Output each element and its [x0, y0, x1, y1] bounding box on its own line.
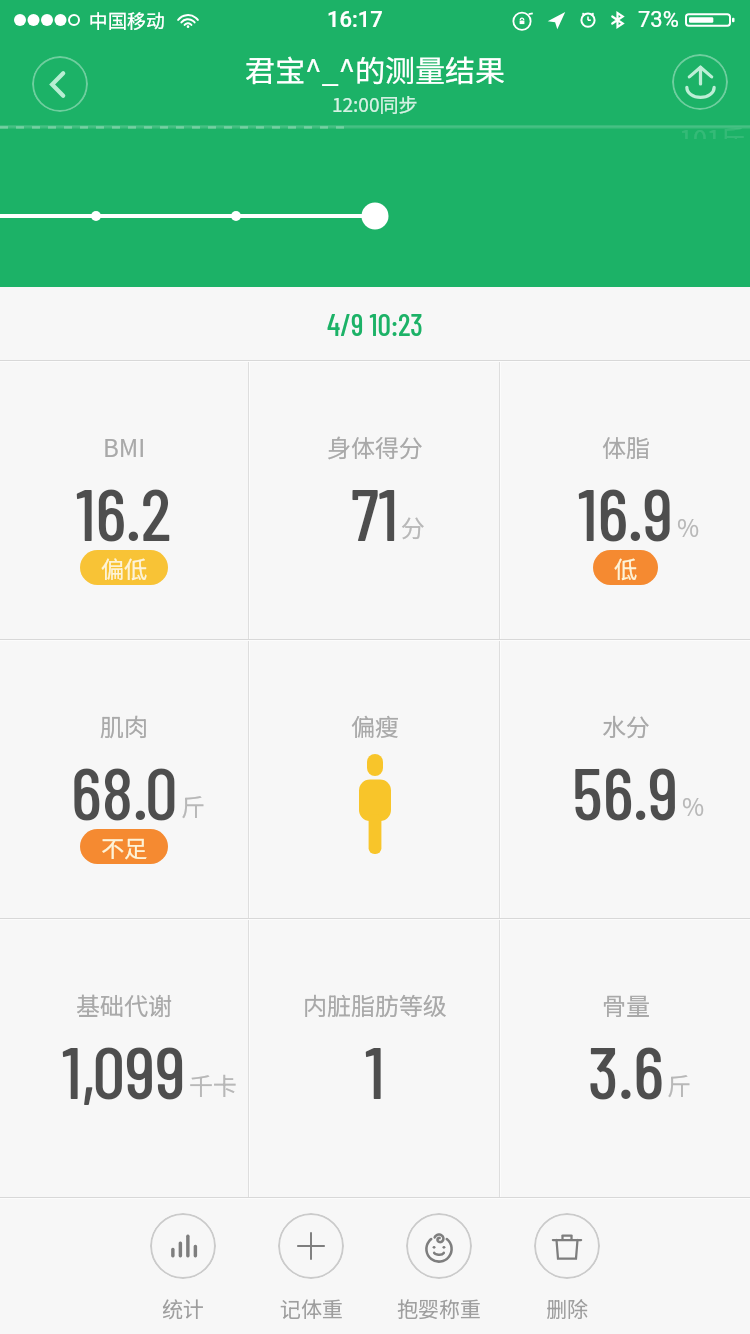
- staticText: 3.6: [588, 1026, 664, 1114]
- staticText: 71: [351, 468, 398, 556]
- staticText: 偏低: [101, 551, 147, 584]
- button[interactable]: BMI: [0, 362, 248, 639]
- button[interactable]: 抱婴称重: [376, 1213, 502, 1323]
- staticText: 56.9: [572, 747, 679, 835]
- button[interactable]: 删除: [504, 1213, 630, 1323]
- staticText: 删除: [546, 1293, 588, 1323]
- button[interactable]: 水分: [501, 641, 750, 918]
- staticText: 内脏脂肪等级: [303, 987, 447, 1022]
- staticText: 体脂: [602, 429, 650, 464]
- staticText: BMI: [103, 429, 146, 464]
- button[interactable]: 基础代谢: [0, 920, 248, 1197]
- staticText: 16:17: [327, 7, 383, 33]
- staticText: 12:00同步: [332, 90, 418, 118]
- button[interactable]: 骨量: [501, 920, 750, 1197]
- button[interactable]: 身体得分: [250, 362, 499, 639]
- staticText: 斤: [667, 1067, 691, 1102]
- staticText: 1,099: [62, 1026, 186, 1114]
- button[interactable]: Back: [32, 56, 88, 112]
- staticText: 中国移动: [89, 6, 166, 34]
- staticText: 千卡: [189, 1067, 237, 1102]
- button[interactable]: 记体重: [248, 1213, 374, 1323]
- staticText: 1: [365, 1026, 385, 1114]
- button[interactable]: 内脏脂肪等级: [250, 920, 499, 1197]
- staticText: 肌肉: [100, 708, 148, 743]
- staticText: 低: [614, 551, 637, 584]
- button[interactable]: 体脂: [501, 362, 750, 639]
- staticText: 基础代谢: [76, 987, 172, 1022]
- button[interactable]: 统计: [120, 1213, 246, 1323]
- staticText: 16.2: [76, 468, 172, 556]
- button[interactable]: 肌肉: [0, 641, 248, 918]
- staticText: 16.9: [578, 468, 674, 556]
- staticText: 4/9 10:23: [327, 306, 423, 342]
- staticText: 骨量: [602, 987, 650, 1022]
- staticText: %: [682, 788, 705, 823]
- staticText: 101斤: [679, 128, 746, 139]
- staticText: 斤: [181, 788, 205, 823]
- staticText: 73%: [638, 7, 679, 33]
- button[interactable]: Share: [672, 54, 728, 110]
- staticText: 不足: [101, 830, 147, 863]
- button[interactable]: 偏低: [80, 550, 168, 585]
- staticText: 记体重: [280, 1293, 343, 1323]
- staticText: 统计: [162, 1293, 204, 1323]
- staticText: 68.0: [71, 747, 178, 835]
- staticText: %: [677, 509, 700, 544]
- button[interactable]: 偏瘦: [250, 641, 499, 918]
- staticText: 抱婴称重: [397, 1293, 481, 1323]
- staticText: 身体得分: [327, 429, 423, 464]
- button[interactable]: 低: [593, 550, 658, 585]
- staticText: 君宝^_^的测量结果: [245, 47, 506, 90]
- staticText: 分: [401, 509, 425, 544]
- button[interactable]: 不足: [80, 829, 168, 864]
- staticText: 水分: [602, 708, 650, 743]
- staticText: 偏瘦: [351, 708, 399, 743]
